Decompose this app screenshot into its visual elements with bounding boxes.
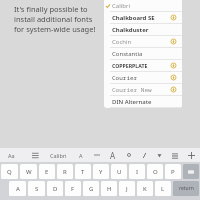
staticText: I [136, 168, 139, 176]
button[interactable]: Calibri [50, 152, 67, 159]
staticText: A [110, 150, 116, 160]
staticText: Chalkboard SE [112, 14, 155, 22]
button[interactable]: return [173, 181, 199, 196]
button[interactable]: Italic [140, 151, 148, 159]
button[interactable]: Courier [104, 72, 182, 83]
staticText: D [53, 185, 58, 193]
staticText: L [161, 185, 165, 193]
staticText: K [143, 185, 147, 193]
staticText: R [63, 168, 67, 176]
staticText: G [89, 185, 94, 193]
button[interactable]: D [47, 181, 63, 196]
staticText: for system-wide usage! [14, 24, 96, 34]
staticText: Courier [112, 74, 138, 82]
button[interactable]: Download font [171, 39, 176, 44]
button[interactable]: Y [93, 164, 109, 179]
button[interactable]: Download font [171, 15, 176, 20]
staticText: U [117, 168, 122, 176]
button[interactable]: Chalkduster [104, 24, 182, 35]
button[interactable]: Size [93, 151, 101, 159]
staticText: DIN Alternate [112, 98, 152, 106]
button[interactable]: T [75, 164, 91, 179]
button[interactable]: A [9, 181, 26, 196]
button[interactable]: Align [170, 151, 179, 160]
button[interactable]: Download font [171, 63, 176, 68]
staticText: O [153, 168, 158, 176]
button[interactable]: Text style [6, 150, 16, 160]
button[interactable]: R [57, 164, 73, 179]
button[interactable]: S [28, 181, 45, 196]
button[interactable]: Q [1, 164, 18, 179]
button[interactable]: L [155, 181, 171, 196]
staticText: T [81, 168, 85, 176]
staticText: Cochin [112, 38, 132, 46]
button[interactable]: Insert [186, 150, 196, 160]
button[interactable]: U [111, 164, 127, 179]
button[interactable]: G [83, 181, 99, 196]
staticText: Chalkduster [112, 26, 149, 34]
button[interactable]: DIN Alternate [104, 96, 182, 107]
button[interactable]: Courier New [104, 84, 182, 95]
button[interactable]: F [65, 181, 81, 196]
staticText: H [107, 185, 112, 193]
button[interactable]: Indent [30, 150, 40, 160]
button[interactable]: Chalkboard SE [104, 12, 182, 23]
staticText: P [171, 168, 175, 176]
staticText: F [71, 185, 75, 193]
button[interactable]: Calibri [104, 0, 182, 11]
staticText: E [45, 168, 49, 176]
staticText: Constantia [112, 50, 143, 58]
staticText: S [35, 185, 39, 193]
button[interactable]: O [147, 164, 163, 179]
staticText: Aa [8, 152, 15, 159]
staticText: Q [7, 168, 12, 176]
button[interactable]: Bold [125, 151, 133, 159]
staticText: install additional fonts [14, 14, 93, 24]
button[interactable]: E [39, 164, 55, 179]
button[interactable]: Download font [171, 75, 176, 80]
staticText: W [26, 168, 32, 176]
button[interactable]: W [20, 164, 37, 179]
button[interactable]: Constantia [104, 48, 182, 59]
staticText: A [16, 185, 20, 193]
button[interactable]: Cochin [104, 36, 182, 47]
staticText: Calibri [112, 2, 130, 10]
staticText: It's finally possible to [14, 4, 88, 14]
button[interactable]: Backspace [183, 164, 199, 179]
button[interactable]: P [165, 164, 181, 179]
staticText: A [79, 152, 83, 159]
staticText: COPPERPLATE [112, 62, 148, 69]
button[interactable]: H [101, 181, 117, 196]
button[interactable]: Decrease size [76, 150, 86, 160]
staticText: J [126, 185, 128, 193]
button[interactable]: Download font [171, 87, 176, 92]
staticText: Courier New [112, 86, 152, 94]
staticText: return [179, 185, 194, 192]
button[interactable]: Increase size [108, 150, 118, 160]
staticText: Y [99, 168, 103, 176]
button[interactable]: J [119, 181, 135, 196]
button[interactable]: COPPERPLATE [104, 60, 182, 71]
button[interactable]: I [129, 164, 145, 179]
button[interactable]: K [137, 181, 153, 196]
button[interactable]: Highlight [155, 151, 163, 159]
